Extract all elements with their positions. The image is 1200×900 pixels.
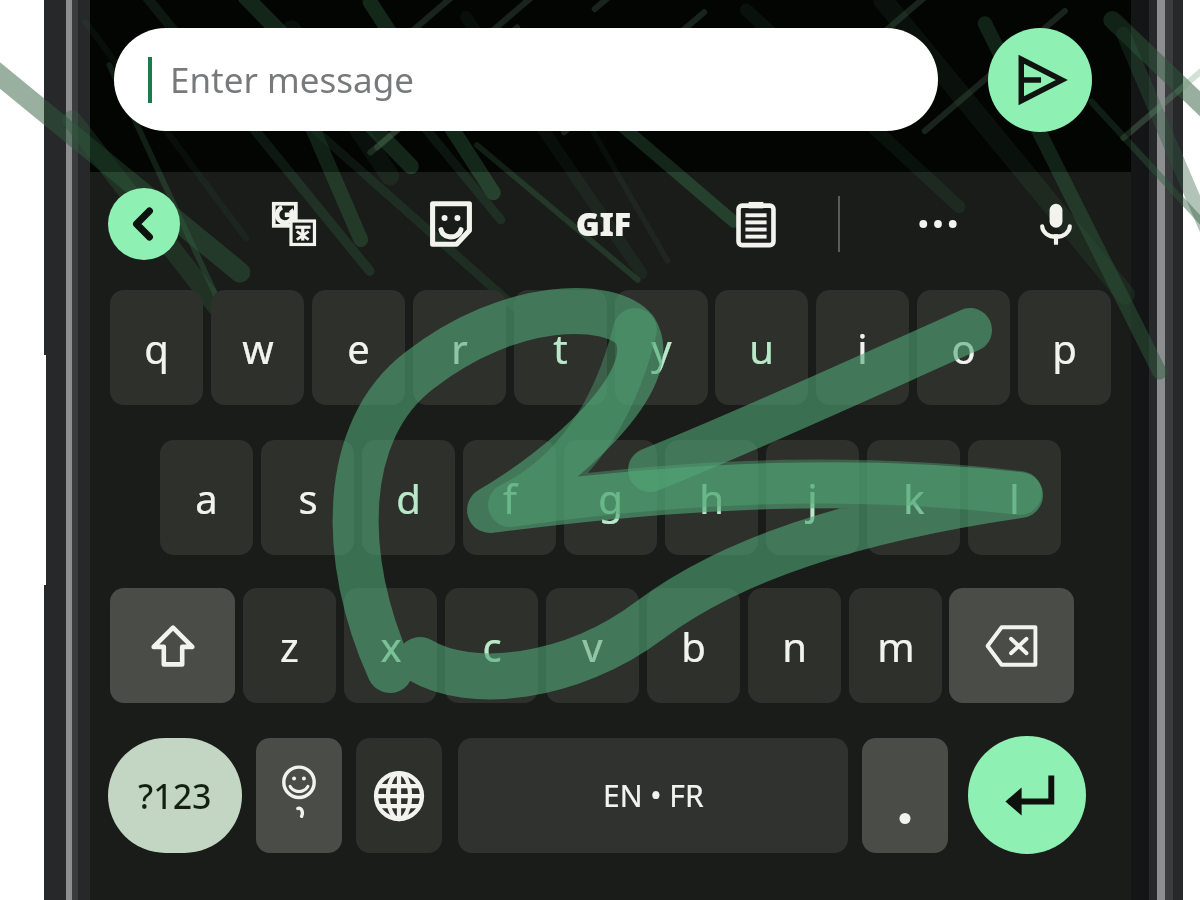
button[interactable]: g — [564, 440, 657, 555]
button[interactable]: e — [312, 290, 405, 405]
button[interactable]: b — [647, 588, 740, 703]
button[interactable]: u — [715, 290, 808, 405]
button[interactable]: Send — [988, 28, 1092, 132]
staticText: o — [951, 321, 976, 375]
staticText: y — [651, 321, 672, 375]
button[interactable]: p — [1018, 290, 1111, 405]
button[interactable]: f — [463, 440, 556, 555]
staticText: d — [396, 471, 421, 525]
staticText: x — [380, 619, 402, 673]
button[interactable]: Change language — [356, 738, 442, 853]
button[interactable]: h — [665, 440, 758, 555]
button[interactable]: t — [514, 290, 607, 405]
button[interactable]: Back — [108, 188, 180, 260]
staticText: r — [451, 321, 468, 375]
staticText: h — [699, 471, 724, 525]
staticText: c — [482, 619, 502, 673]
staticText: b — [681, 619, 706, 673]
button[interactable] — [862, 738, 948, 853]
staticText: e — [347, 321, 370, 375]
staticText: g — [598, 471, 623, 525]
button[interactable]: m — [849, 588, 942, 703]
staticText: t — [553, 321, 568, 375]
staticText: p — [1052, 321, 1077, 375]
button[interactable]: Emoji — [256, 738, 342, 853]
button[interactable]: Translate — [258, 188, 330, 260]
button[interactable]: d — [362, 440, 455, 555]
button[interactable]: y — [615, 290, 708, 405]
staticText: ?123 — [138, 773, 212, 819]
button[interactable]: c — [445, 588, 538, 703]
staticText: u — [749, 321, 774, 375]
button[interactable]: i — [816, 290, 909, 405]
button[interactable]: Clipboard — [720, 188, 792, 260]
button[interactable]: l — [968, 440, 1061, 555]
staticText: v — [582, 619, 603, 673]
staticText: GIF — [576, 202, 632, 246]
staticText: a — [195, 471, 218, 525]
button[interactable]: EN • FR — [458, 738, 848, 853]
staticText: m — [877, 619, 915, 673]
button[interactable]: More options — [902, 188, 974, 260]
staticText: k — [903, 471, 925, 525]
button[interactable]: o — [917, 290, 1010, 405]
button[interactable]: v — [546, 588, 639, 703]
staticText: Enter message — [170, 56, 414, 104]
staticText: j — [807, 471, 818, 525]
staticText: z — [280, 619, 299, 673]
staticText: i — [857, 321, 868, 375]
button[interactable]: ?123 — [108, 738, 242, 853]
staticText: EN • FR — [603, 775, 704, 816]
button[interactable]: k — [867, 440, 960, 555]
staticText: q — [144, 321, 169, 375]
button[interactable]: n — [748, 588, 841, 703]
button[interactable]: a — [160, 440, 253, 555]
staticText: s — [298, 471, 318, 525]
button[interactable]: Enter — [968, 736, 1086, 854]
staticText: l — [1009, 471, 1020, 525]
button[interactable]: z — [243, 588, 336, 703]
button[interactable]: j — [766, 440, 859, 555]
staticText: n — [782, 619, 807, 673]
button[interactable]: Enter message — [114, 28, 938, 131]
staticText: f — [503, 471, 517, 525]
button[interactable]: q — [110, 290, 203, 405]
button[interactable]: Shift — [110, 588, 235, 703]
button[interactable]: w — [211, 290, 304, 405]
staticText: w — [242, 321, 274, 375]
button[interactable]: r — [413, 290, 506, 405]
button[interactable]: Backspace — [949, 588, 1074, 703]
button[interactable]: Voice input — [1020, 188, 1092, 260]
button[interactable]: GIF — [568, 188, 640, 260]
button[interactable]: x — [344, 588, 437, 703]
button[interactable]: Sticker — [415, 188, 487, 260]
button[interactable]: s — [261, 440, 354, 555]
